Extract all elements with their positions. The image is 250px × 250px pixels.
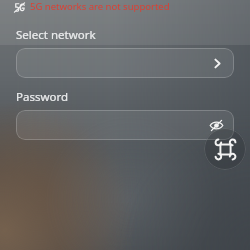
button[interactable]: Select network bbox=[16, 48, 234, 78]
staticText: Select network bbox=[16, 27, 96, 43]
staticText: 5G networks are not supported bbox=[30, 0, 170, 13]
button[interactable]: Password bbox=[16, 110, 234, 140]
staticText: Password bbox=[16, 89, 69, 105]
other: 5G unsupported bbox=[14, 2, 25, 13]
button[interactable]: Keyboard shortcuts bbox=[204, 128, 246, 170]
